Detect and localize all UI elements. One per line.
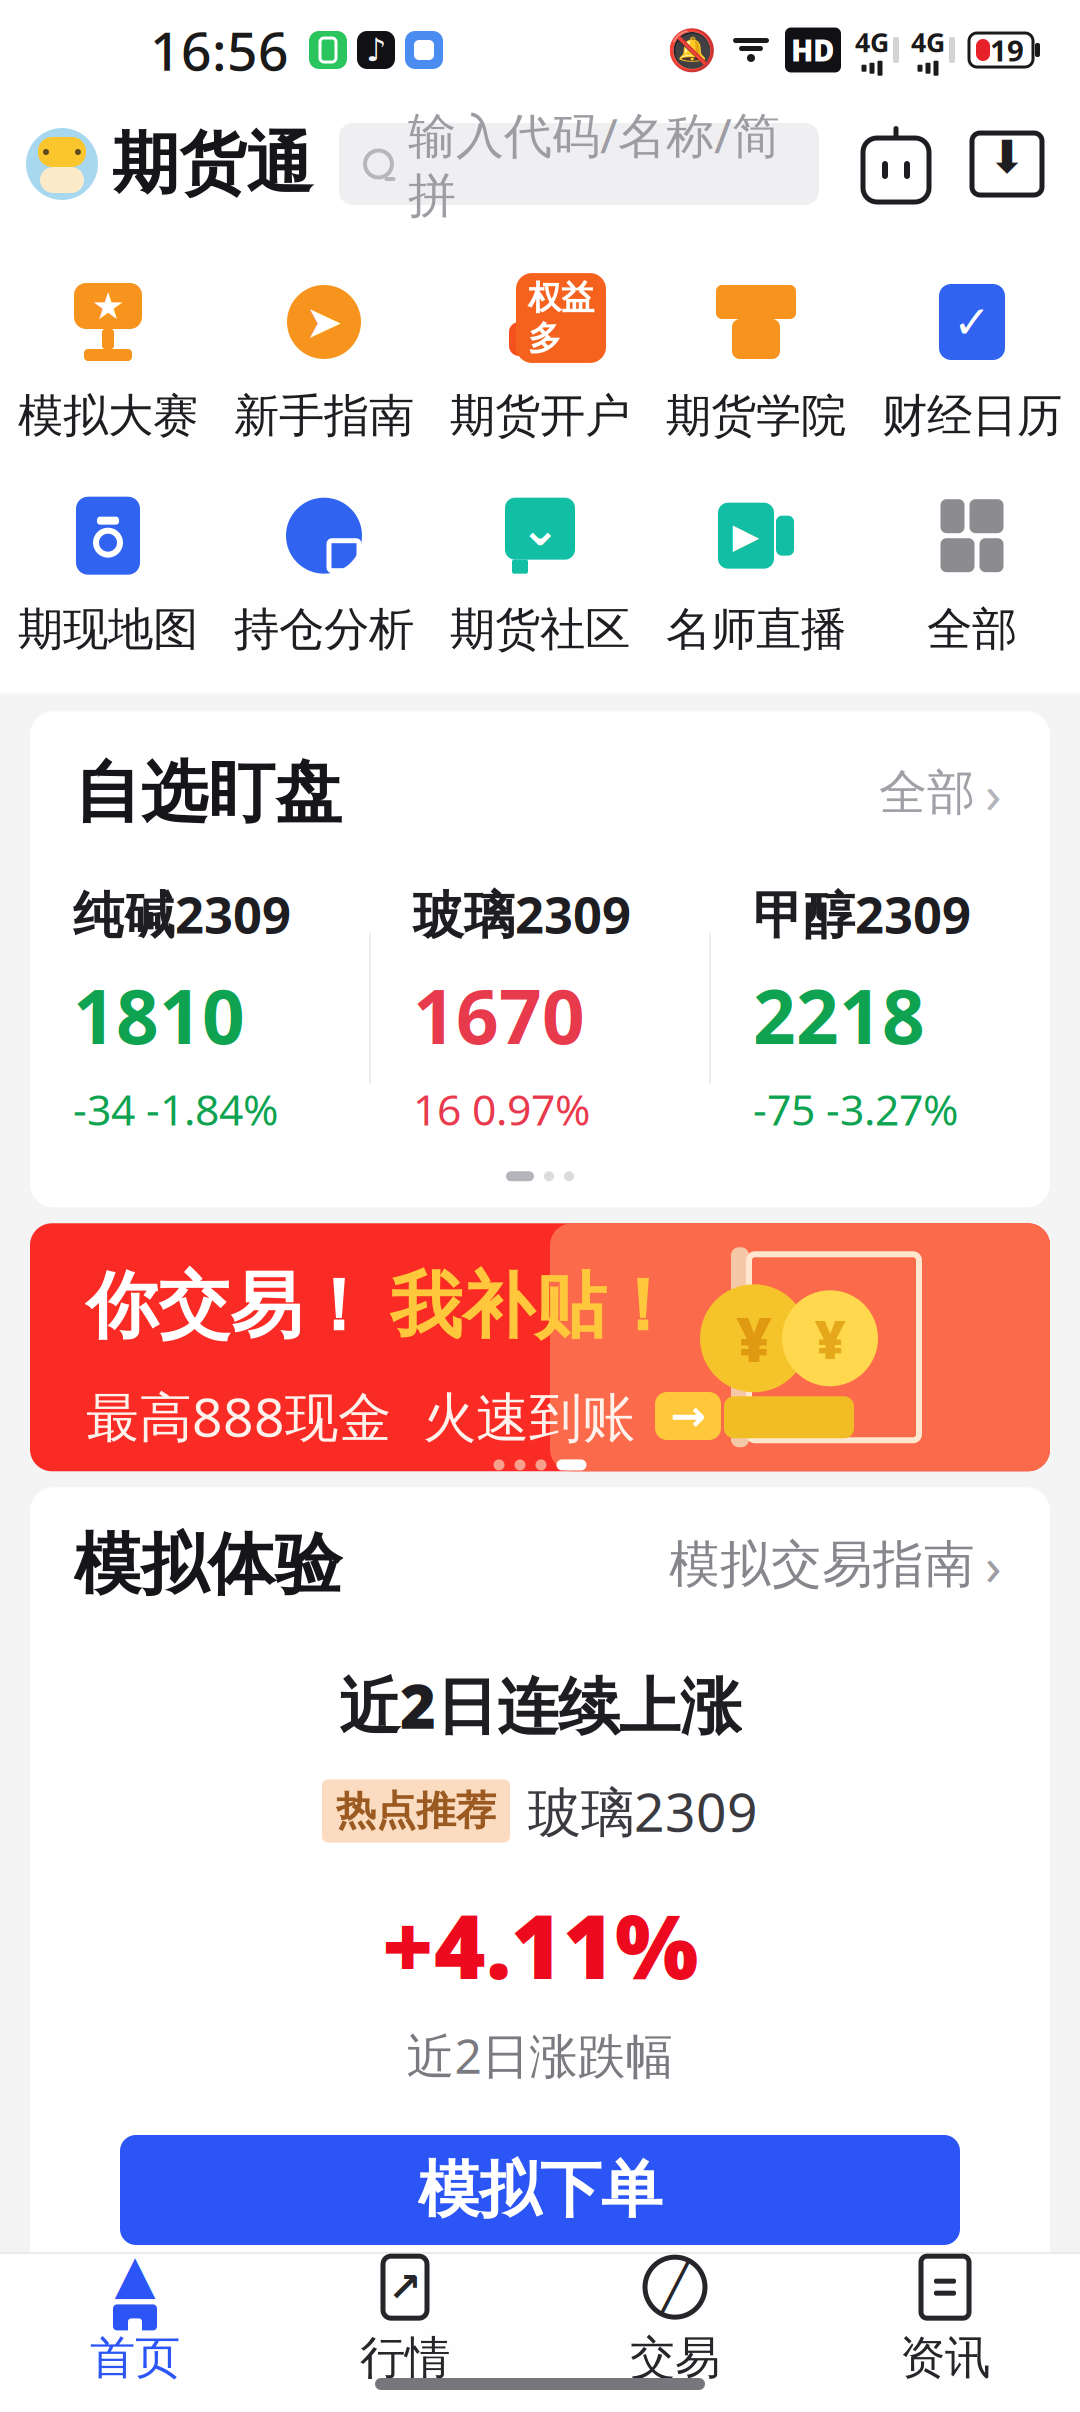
- staticText: 你交易！: [86, 1262, 374, 1351]
- staticText: ➤: [305, 296, 343, 348]
- button[interactable]: 智能助手: [858, 121, 934, 207]
- button[interactable]: ↗: [270, 2254, 540, 2378]
- staticText: ╱: [661, 2261, 688, 2313]
- staticText: 全部: [879, 763, 975, 822]
- staticText: 全部: [927, 602, 1017, 657]
- button[interactable]: ✓: [864, 272, 1080, 444]
- staticText: 行情: [360, 2330, 450, 2386]
- staticText: 近2日涨跌幅: [406, 2023, 673, 2087]
- staticText: 首页: [90, 2330, 180, 2386]
- staticText: 16 0.97%: [413, 1081, 590, 1137]
- staticText: +4.11%: [382, 1886, 698, 2003]
- button[interactable]: ╱: [540, 2254, 810, 2378]
- staticText: 资讯: [900, 2330, 990, 2386]
- staticText: 🔕: [667, 27, 717, 73]
- staticText: 玻璃2309: [413, 880, 631, 947]
- staticText: 新手指南: [234, 388, 414, 444]
- staticText: 期现地图: [18, 602, 198, 657]
- staticText: 自选盯盘: [74, 752, 342, 834]
- staticText: 16:56: [150, 15, 289, 85]
- button[interactable]: ¥: [30, 1223, 1050, 1471]
- staticText: 2218: [753, 965, 925, 1065]
- staticText: 输入代码/名称/简拼: [408, 103, 780, 225]
- button[interactable]: 全部: [867, 749, 1014, 836]
- staticText: ▲: [114, 2244, 155, 2304]
- staticText: 4G: [911, 24, 945, 60]
- button[interactable]: ➤: [216, 272, 432, 444]
- staticText: 模拟大赛: [18, 388, 198, 444]
- staticText: 期货通: [112, 123, 313, 205]
- staticText: ›: [985, 757, 1002, 828]
- button[interactable]: ★: [0, 272, 216, 444]
- staticText: ↗: [388, 2264, 422, 2310]
- button[interactable]: 持仓分析: [216, 486, 432, 657]
- staticText: -75 -3.27%: [753, 1081, 958, 1137]
- staticText: ♪: [366, 32, 386, 68]
- staticText: 4G: [855, 24, 889, 60]
- button[interactable]: +: [432, 272, 648, 444]
- button[interactable]: 期现地图: [0, 486, 216, 657]
- staticText: 期货学院: [666, 388, 846, 444]
- staticText: 模拟交易指南: [669, 1534, 975, 1596]
- staticText: ★: [91, 285, 124, 327]
- staticText: 体验模拟交易，了解交易规则: [247, 2285, 832, 2341]
- staticText: 1670: [413, 965, 585, 1065]
- staticText: 交易: [630, 2330, 720, 2386]
- staticText: 模拟下单: [418, 2152, 662, 2228]
- staticText: 最高888现金 火速到账: [86, 1381, 635, 1451]
- staticText: ⬇: [988, 131, 1026, 183]
- staticText: 财经日历: [882, 388, 1062, 444]
- staticText: 甲醇2309: [753, 880, 971, 947]
- staticText: ▶: [732, 516, 759, 555]
- staticText: ✓: [953, 296, 991, 348]
- staticText: ⌄: [520, 501, 560, 556]
- button[interactable]: 纯碱2309: [31, 880, 369, 1137]
- button[interactable]: 期货学院: [648, 272, 864, 444]
- button[interactable]: ⌄: [432, 486, 648, 657]
- staticText: HD: [791, 30, 835, 69]
- staticText: 持仓分析: [234, 602, 414, 657]
- button[interactable]: 玻璃2309: [371, 880, 709, 1137]
- staticText: 近2日连续上涨: [339, 1664, 741, 1745]
- staticText: 19: [990, 30, 1024, 69]
- button[interactable]: ▶: [648, 486, 864, 657]
- staticText: +: [554, 318, 575, 368]
- staticText: 1810: [73, 965, 245, 1065]
- staticText: →: [670, 1392, 706, 1440]
- staticText: -34 -1.84%: [73, 1081, 278, 1137]
- staticText: 玻璃2309: [528, 1776, 758, 1846]
- staticText: 期货开户: [450, 388, 630, 444]
- button[interactable]: 全部: [864, 486, 1080, 657]
- staticText: 名师直播: [666, 602, 846, 657]
- staticText: 热点推荐: [336, 1786, 496, 1835]
- button[interactable]: 甲醇2309: [711, 880, 1049, 1137]
- staticText: 期货社区: [450, 602, 630, 657]
- staticText: 权益多: [528, 277, 594, 359]
- button[interactable]: ▲: [0, 2254, 270, 2378]
- staticText: ¥: [814, 1303, 845, 1374]
- staticText: 我补贴！: [390, 1262, 678, 1351]
- staticText: ›: [985, 1529, 1002, 1600]
- button[interactable]: 输入代码/名称/简拼: [339, 123, 819, 205]
- staticText: ¥: [736, 1298, 772, 1379]
- staticText: 模拟体验: [74, 1524, 342, 1606]
- button[interactable]: 模拟交易指南: [657, 1521, 1014, 1608]
- button[interactable]: 资讯: [810, 2254, 1080, 2378]
- button[interactable]: 消息: [968, 121, 1046, 207]
- staticText: 纯碱2309: [73, 880, 291, 947]
- button[interactable]: 模拟下单: [120, 2135, 960, 2245]
